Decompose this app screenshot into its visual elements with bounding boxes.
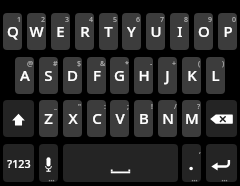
button[interactable]: Enter <box>206 144 237 182</box>
button[interactable]: Shift <box>3 100 34 137</box>
staticText: H <box>138 65 150 85</box>
staticText: E <box>56 21 65 41</box>
staticText: ( <box>198 59 201 69</box>
staticText: L <box>211 65 220 85</box>
staticText: ! <box>151 102 153 112</box>
button[interactable]: ?123 <box>3 144 34 182</box>
staticText: 8 <box>184 15 189 25</box>
staticText: _ <box>54 102 58 112</box>
button[interactable]: * <box>110 57 129 94</box>
button[interactable]: 7 <box>146 13 165 50</box>
staticText: 3 <box>65 15 70 25</box>
staticText: " <box>78 102 82 112</box>
staticText: T <box>104 21 113 41</box>
button[interactable]: Backspace <box>206 100 237 137</box>
staticText: O <box>198 21 210 41</box>
staticText: W <box>29 21 44 41</box>
button[interactable]: 5 <box>99 13 118 50</box>
staticText: R <box>80 21 90 41</box>
staticText: P <box>223 21 233 41</box>
button[interactable]: ! <box>134 100 153 137</box>
staticText: N <box>162 108 174 128</box>
staticText: 7 <box>160 15 165 25</box>
button[interactable]: 1 <box>3 13 22 50</box>
button[interactable]: 0 <box>218 13 237 50</box>
staticText: 4 <box>89 15 94 25</box>
button[interactable]: - <box>134 57 153 94</box>
button[interactable]: $ <box>63 57 82 94</box>
staticText: C <box>92 108 102 128</box>
staticText: ?123 <box>7 156 31 171</box>
staticText: - <box>150 59 153 69</box>
staticText: G <box>114 65 125 85</box>
staticText: I <box>177 21 183 41</box>
staticText: ) <box>222 59 225 69</box>
button[interactable]: 8 <box>170 13 189 50</box>
staticText: : <box>104 102 106 112</box>
button[interactable]: @ <box>15 57 34 94</box>
staticText: / <box>174 102 177 112</box>
staticText: V <box>115 108 125 128</box>
staticText: # <box>53 59 58 69</box>
button[interactable]: ( <box>182 57 201 94</box>
button[interactable]: ) <box>206 57 225 94</box>
button[interactable]: Space <box>63 144 178 182</box>
staticText: S <box>44 65 53 85</box>
staticText: 9 <box>208 15 213 25</box>
staticText: B <box>139 108 149 128</box>
button[interactable]: Voice input <box>39 144 58 182</box>
staticText: K <box>187 65 197 85</box>
staticText: 2 <box>41 15 46 25</box>
button[interactable]: 9 <box>194 13 213 50</box>
button[interactable]: 3 <box>51 13 70 50</box>
button[interactable]: " <box>63 100 82 137</box>
button[interactable]: ; <box>110 100 129 137</box>
staticText: F <box>93 65 101 85</box>
staticText: ? <box>197 102 201 112</box>
staticText: Z <box>44 108 53 128</box>
staticText: 6 <box>136 15 141 25</box>
staticText: 5 <box>113 15 118 25</box>
staticText: , <box>199 146 201 156</box>
button[interactable]: # <box>39 57 58 94</box>
button[interactable]: + <box>158 57 177 94</box>
staticText: & <box>100 59 106 69</box>
staticText: Y <box>127 21 136 41</box>
staticText: 1 <box>17 15 22 25</box>
button[interactable]: & <box>87 57 106 94</box>
staticText: A <box>20 65 30 85</box>
staticText: * <box>125 59 129 69</box>
staticText: J <box>165 65 170 85</box>
staticText: X <box>68 108 78 128</box>
staticText: U <box>150 21 162 41</box>
staticText: @ <box>27 59 34 69</box>
button[interactable]: Period <box>182 144 201 182</box>
staticText: + <box>172 59 177 69</box>
button[interactable]: 4 <box>75 13 94 50</box>
staticText: D <box>67 65 78 85</box>
staticText: $ <box>77 59 82 69</box>
button[interactable]: 2 <box>27 13 46 50</box>
staticText: M <box>185 108 199 128</box>
button[interactable]: : <box>87 100 106 137</box>
staticText: ; <box>127 102 129 112</box>
button[interactable]: _ <box>39 100 58 137</box>
staticText: 0 <box>232 15 237 25</box>
button[interactable]: / <box>158 100 177 137</box>
button[interactable]: 6 <box>122 13 141 50</box>
button[interactable]: ? <box>182 100 201 137</box>
staticText: Q <box>7 21 19 41</box>
